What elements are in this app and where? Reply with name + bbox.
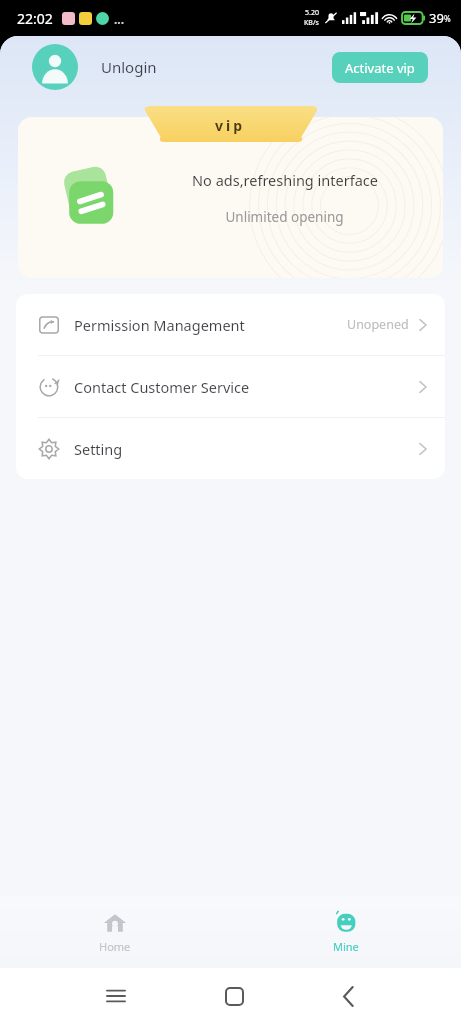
button[interactable]: Avatar (32, 44, 78, 90)
staticText: vip (215, 116, 246, 135)
staticText: KB/s (304, 18, 319, 28)
button[interactable]: No ads,refreshing interface (18, 117, 443, 278)
staticText: Activate vip (345, 59, 415, 77)
staticText: Contact Customer Service (74, 377, 250, 397)
staticText: 5.20 (305, 8, 319, 18)
button[interactable]: Mine (309, 904, 383, 960)
staticText: ... (114, 11, 125, 27)
button[interactable]: Home (75, 904, 155, 960)
button[interactable]: Activate vip (332, 52, 428, 83)
staticText: Home (99, 939, 131, 954)
staticText: 22:02 (17, 9, 53, 28)
staticText: Mine (333, 939, 359, 954)
staticText: % (444, 13, 451, 24)
staticText: Unopened (347, 316, 409, 333)
staticText: No ads,refreshing interface (192, 170, 378, 190)
button[interactable]: Setting (16, 418, 445, 479)
button[interactable]: Contact Customer Service (16, 356, 445, 417)
staticText: 39 (429, 9, 444, 27)
staticText: Unlogin (101, 57, 157, 77)
staticText: Unlimited opening (225, 208, 344, 226)
button[interactable]: Home (214, 976, 255, 1017)
button[interactable]: Back (331, 975, 366, 1018)
staticText: Setting (74, 439, 123, 459)
staticText: Permission Management (74, 315, 245, 335)
button[interactable]: Permission Management (16, 294, 445, 355)
button[interactable]: Recents (95, 975, 137, 1017)
